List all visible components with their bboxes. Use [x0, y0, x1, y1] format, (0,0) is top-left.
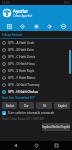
button[interactable]: GPS - E Hatti Raylx	[0, 67, 72, 74]
staticText: Seyahat Verileri Kaydet	[42, 125, 70, 129]
staticText: Cihaz Secimi	[2, 32, 23, 37]
button[interactable]: Navigate	[45, 22, 54, 31]
staticText: GPS - B Hatti Kara	[8, 48, 34, 52]
button[interactable]: Home	[32, 141, 41, 150]
button[interactable]: GPS - G Hatti Tramvay	[0, 81, 72, 88]
button[interactable]: GPS - A Hatti Ucak	[0, 39, 72, 46]
button[interactable]: Recents	[52, 141, 61, 150]
button[interactable]: GPS - F Hatti Metro	[0, 74, 72, 81]
button[interactable]: GPS - C Hatti Deniz	[0, 53, 72, 60]
button[interactable]: Settings	[59, 22, 68, 31]
button[interactable]: Sil	[36, 102, 52, 109]
button[interactable]: GPS - H Hatti Otobus	[0, 88, 72, 95]
button[interactable]: Tum seferler otomatik aranacak	[2, 109, 72, 116]
staticText: GPS - E Hatti Raylx	[8, 69, 35, 73]
button[interactable]: Baslat	[2, 102, 17, 109]
staticText: GPS - F Hatti Metro	[8, 76, 36, 80]
staticText: Tum seferler otomatik aranacak	[8, 111, 55, 115]
staticText: Sil	[43, 104, 46, 108]
staticText: Kaydet	[58, 104, 67, 108]
button[interactable]: Locate	[32, 22, 41, 31]
button[interactable]: Grid	[5, 22, 14, 31]
staticText: GPS - D Hatti Hava	[8, 62, 35, 66]
staticText: 96%	[64, 1, 70, 5]
staticText: Ayarlar	[13, 8, 29, 14]
staticText: Cihaz Ayarlari	[13, 14, 33, 18]
staticText: GPS - C Hatti Deniz	[8, 55, 36, 59]
staticText: GPS - H Hatti Otobus	[8, 90, 39, 94]
staticText: Dur	[24, 104, 29, 108]
button[interactable]: Back	[11, 141, 20, 150]
button[interactable]: GPS - D Hatti Hava	[0, 60, 72, 67]
button[interactable]: Seyahat Verileri Kaydet	[42, 123, 70, 131]
button[interactable]: Layers	[18, 22, 27, 31]
button[interactable]: Dur	[19, 102, 34, 109]
button[interactable]: Kaydet	[54, 102, 70, 109]
staticText: Veri Seti Secimleri 0/1	[2, 96, 35, 100]
staticText: GPS - A Hatti Ucak	[8, 41, 35, 45]
button[interactable]: GPS - B Hatti Kara	[0, 46, 72, 53]
staticText: Secili Cihaz Kodu: GPT-108T-A0	[2, 117, 44, 121]
staticText: 12:05	[2, 1, 10, 5]
staticText: GPS - G Hatti Tramvay	[8, 83, 40, 87]
staticText: Baslat	[6, 104, 14, 108]
